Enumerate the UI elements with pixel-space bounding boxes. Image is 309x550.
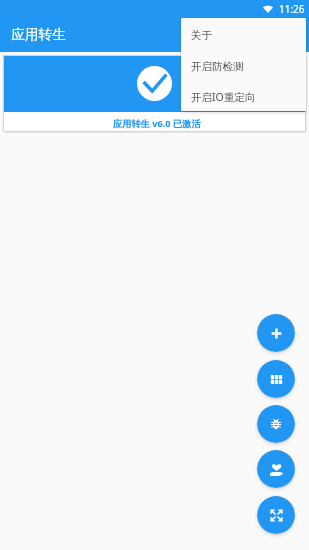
button[interactable]: Expand [257, 496, 295, 534]
staticText: 开启IO重定向 [191, 90, 256, 104]
button[interactable]: Bug report [257, 405, 295, 443]
staticText: 开启防检测 [191, 60, 244, 73]
staticText: 11:26 [279, 2, 305, 16]
staticText: 应用转生 v6.0 已激活 [113, 117, 201, 130]
button[interactable]: Add [257, 314, 295, 352]
button[interactable]: 开启IO重定向 [181, 82, 306, 111]
staticText: 关于 [191, 29, 212, 42]
button[interactable]: 开启防检测 [181, 51, 306, 82]
button[interactable]: 应用转生 v6.0 已激活 [3, 55, 306, 132]
button[interactable]: Donate [257, 450, 295, 488]
button[interactable]: Apps [257, 360, 295, 398]
staticText: 应用转生 [11, 26, 66, 43]
button[interactable]: 关于 [181, 20, 306, 51]
